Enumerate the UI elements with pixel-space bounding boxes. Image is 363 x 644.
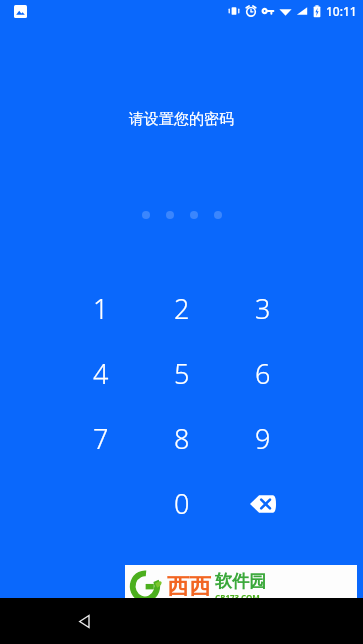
button[interactable]: 9 <box>222 406 303 471</box>
staticText: 1 <box>93 290 109 327</box>
staticText: 软件园 <box>215 571 266 592</box>
staticText: 3 <box>255 290 271 327</box>
button[interactable]: 1 <box>60 276 141 341</box>
button[interactable]: 3 <box>222 276 303 341</box>
staticText: 9 <box>255 420 271 457</box>
staticText: 8 <box>174 420 190 457</box>
staticText: 4 <box>93 355 109 392</box>
staticText: 请设置您的密码 <box>0 110 363 129</box>
button[interactable]: 8 <box>141 406 222 471</box>
button[interactable]: 7 <box>60 406 141 471</box>
staticText: 0 <box>174 485 190 522</box>
button[interactable]: Back <box>61 598 107 644</box>
button[interactable]: 4 <box>60 341 141 406</box>
staticText: 6 <box>255 355 271 392</box>
staticText: 7 <box>93 420 109 457</box>
staticText: 西西 <box>167 573 211 601</box>
button[interactable]: 2 <box>141 276 222 341</box>
button[interactable]: 5 <box>141 341 222 406</box>
staticText: 10:11 <box>326 3 357 19</box>
staticText: 2 <box>174 290 190 327</box>
button[interactable]: Delete <box>222 471 303 536</box>
staticText: 5 <box>174 355 190 392</box>
button[interactable]: 0 <box>141 471 222 536</box>
staticText: CR173.COM <box>215 592 260 603</box>
button[interactable]: 6 <box>222 341 303 406</box>
